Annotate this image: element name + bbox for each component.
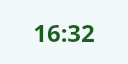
staticText: 16:32: [33, 16, 95, 49]
